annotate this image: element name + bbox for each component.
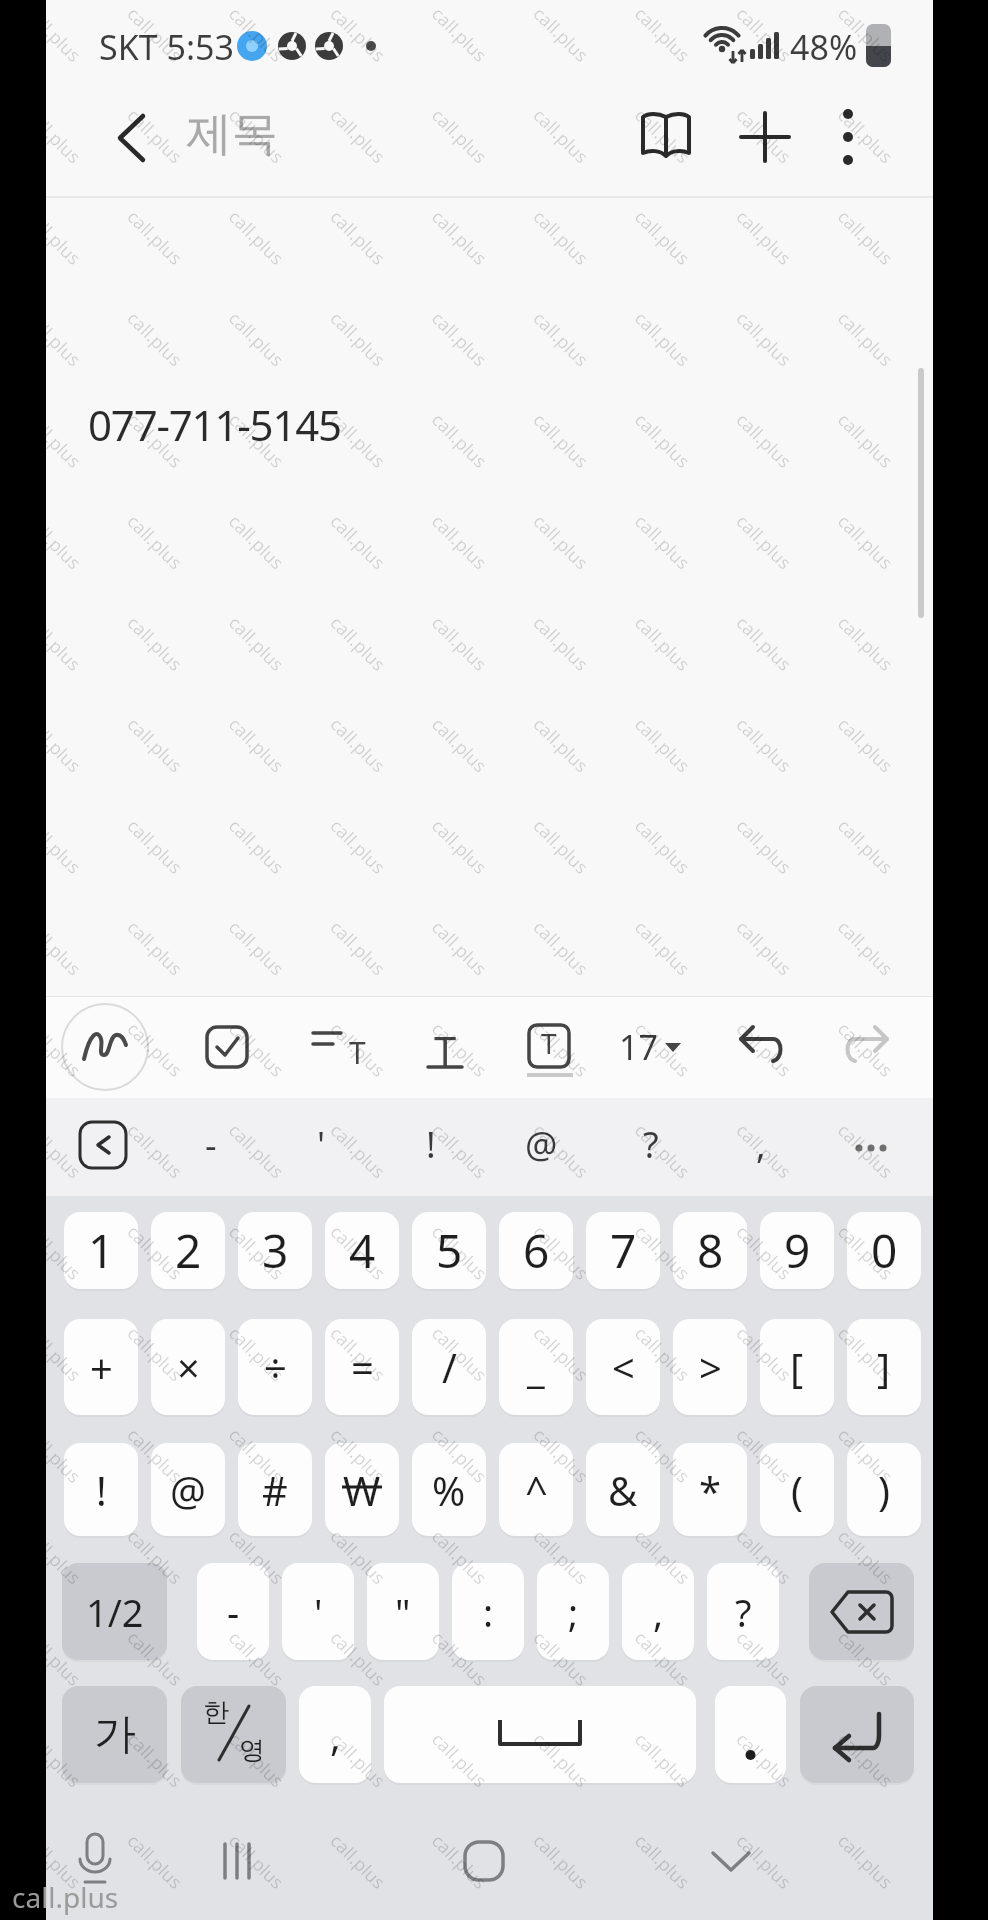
staticText: 2 xyxy=(175,1219,202,1282)
staticText: ! xyxy=(96,1463,107,1517)
staticText: T xyxy=(541,1024,557,1062)
staticText: × xyxy=(177,1340,200,1394)
staticText: 4 xyxy=(349,1219,376,1282)
staticText: > xyxy=(699,1340,722,1394)
staticText: * xyxy=(699,1463,722,1517)
staticText: % xyxy=(432,1463,466,1517)
staticText: + xyxy=(90,1340,113,1394)
staticText: T xyxy=(434,1023,457,1067)
staticText: 한 xyxy=(203,1696,229,1729)
staticText: call.plus xyxy=(12,1878,119,1916)
staticText: - xyxy=(227,1586,240,1638)
staticText: 7 xyxy=(610,1219,637,1282)
staticText: 제목 xyxy=(186,105,278,163)
staticText: ) xyxy=(878,1463,890,1517)
staticText: , xyxy=(330,1708,341,1762)
staticText: 0 xyxy=(871,1219,898,1282)
staticText: ? xyxy=(643,1120,659,1169)
staticText: [ xyxy=(790,1340,804,1394)
staticText: @ xyxy=(525,1120,558,1169)
staticText: _ xyxy=(527,1340,545,1394)
staticText: & xyxy=(608,1463,638,1517)
staticText: 가 xyxy=(94,1708,136,1761)
staticText: ; xyxy=(568,1586,579,1638)
staticText: @ xyxy=(170,1463,206,1517)
staticText: 48% xyxy=(790,24,858,70)
staticText: , xyxy=(756,1120,766,1169)
staticText: 9 xyxy=(784,1219,811,1282)
staticText: < xyxy=(612,1340,635,1394)
staticText: ? xyxy=(735,1586,752,1638)
staticText: 5 xyxy=(436,1219,463,1282)
staticText: 077-711-5145 xyxy=(88,396,341,453)
staticText: ( xyxy=(791,1463,803,1517)
staticText: 1 xyxy=(88,1219,115,1282)
staticText: 8 xyxy=(697,1219,724,1282)
staticText: # xyxy=(262,1463,288,1517)
staticText: 영 xyxy=(239,1734,265,1767)
staticText: / xyxy=(442,1340,457,1394)
staticText: T xyxy=(349,1032,366,1072)
staticText: " xyxy=(395,1586,411,1638)
staticText: 6 xyxy=(523,1219,550,1282)
staticText: 1/2 xyxy=(86,1586,144,1638)
staticText: , xyxy=(653,1586,664,1638)
staticText: ^ xyxy=(525,1463,548,1517)
staticText: = xyxy=(351,1340,374,1394)
staticText: ' xyxy=(317,1120,326,1169)
staticText: 3 xyxy=(262,1219,289,1282)
staticText: ! xyxy=(426,1120,436,1169)
staticText: W xyxy=(343,1463,381,1517)
staticText: : xyxy=(483,1586,494,1638)
staticText: ] xyxy=(877,1340,891,1394)
staticText: SKT 5:53 xyxy=(99,24,234,70)
staticText: ' xyxy=(314,1586,323,1638)
staticText: ÷ xyxy=(264,1340,287,1394)
staticText: 17 xyxy=(619,1024,658,1068)
staticText: - xyxy=(205,1120,217,1169)
